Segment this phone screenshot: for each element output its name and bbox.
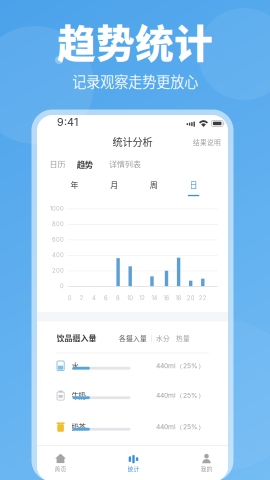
staticText: 年: [71, 179, 79, 190]
staticText: 趋势: [77, 158, 93, 170]
staticText: 结果说明: [193, 137, 221, 147]
staticText: 16: [163, 295, 169, 302]
button[interactable]: 统计: [115, 452, 151, 474]
button[interactable]: 日: [184, 178, 202, 198]
staticText: |: [150, 334, 152, 342]
button[interactable]: 水: [37, 361, 228, 373]
button[interactable]: 年: [66, 178, 84, 198]
button[interactable]: 结果说明: [187, 134, 221, 150]
staticText: 800: [52, 220, 64, 228]
staticText: 4: [92, 295, 96, 302]
staticText: 200: [52, 267, 64, 274]
button[interactable]: 我的: [188, 452, 224, 474]
staticText: 统计: [127, 464, 139, 473]
staticText: 14: [151, 295, 157, 302]
staticText: 趋势统计: [57, 13, 213, 69]
staticText: 水分: [156, 333, 170, 343]
staticText: 统计分析: [112, 134, 152, 149]
staticText: 热量: [176, 333, 190, 343]
button[interactable]: 趋势: [77, 157, 99, 170]
staticText: 日: [189, 179, 197, 190]
staticText: 奶茶: [71, 422, 85, 432]
staticText: 详情列表: [109, 158, 141, 170]
staticText: 首页: [54, 464, 66, 473]
button[interactable]: 周: [145, 178, 163, 198]
staticText: 1000: [50, 205, 64, 212]
button[interactable]: 月: [105, 178, 123, 198]
staticText: 10: [127, 295, 133, 302]
staticText: 日历: [49, 158, 65, 170]
staticText: 0: [60, 283, 64, 290]
button[interactable]: 详情列表: [109, 157, 145, 170]
button[interactable]: 日历: [49, 157, 69, 170]
staticText: 20: [187, 295, 195, 302]
staticText: 周: [150, 179, 158, 190]
staticText: 饮品摄入量: [56, 332, 96, 344]
staticText: 440ml（25%）: [156, 423, 205, 431]
staticText: 600: [52, 236, 64, 243]
button[interactable]: 热量: [170, 332, 190, 344]
staticText: 400: [52, 251, 64, 259]
staticText: 我的: [200, 464, 212, 473]
staticText: 22: [199, 295, 207, 302]
button[interactable]: 水分: [156, 332, 170, 344]
staticText: 6: [104, 295, 108, 302]
staticText: 0: [68, 295, 72, 302]
staticText: 9:41: [57, 115, 78, 128]
staticText: 440ml（25%）: [156, 391, 205, 400]
staticText: 8: [116, 295, 120, 302]
staticText: 2: [80, 295, 84, 302]
staticText: 牛奶: [71, 390, 85, 401]
button[interactable]: 牛奶: [37, 390, 228, 402]
button[interactable]: 各摄入量: [119, 332, 147, 344]
button[interactable]: 首页: [42, 452, 78, 474]
staticText: 月: [110, 179, 118, 190]
staticText: 各摄入量: [119, 333, 147, 343]
staticText: 水: [71, 361, 78, 371]
staticText: 18: [176, 295, 182, 302]
button[interactable]: 奶茶: [37, 422, 228, 434]
staticText: 记录观察走势更放心: [72, 71, 198, 91]
staticText: 12: [139, 295, 145, 302]
staticText: 440ml（25%）: [156, 362, 205, 370]
